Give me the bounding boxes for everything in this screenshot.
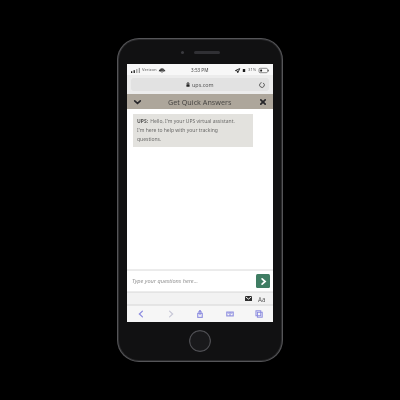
button[interactable]: Type your questions here...	[127, 270, 247, 292]
staticText: Aa	[258, 295, 266, 303]
staticText: 31%	[248, 67, 257, 73]
button[interactable]: Bookmarks	[221, 306, 239, 321]
button[interactable]: Email	[242, 293, 254, 304]
button[interactable]: Tabs	[250, 306, 268, 321]
staticText: UPS:	[137, 118, 149, 125]
staticText: Type your questions here...	[132, 277, 198, 285]
staticText: ups.com	[192, 81, 214, 88]
button[interactable]: ups.com	[131, 78, 269, 91]
button[interactable]: Share	[191, 306, 209, 321]
button[interactable]: Reload	[258, 81, 266, 89]
staticText: I'm here to help with your tracking	[137, 127, 218, 134]
button[interactable]: Forward	[162, 306, 180, 321]
staticText: Verizon	[142, 67, 157, 73]
staticText: Get Quick Answers	[168, 97, 232, 107]
staticText: questions.	[137, 136, 162, 143]
staticText: Hello, I'm your UPS virtual assistant.	[149, 118, 235, 125]
button[interactable]: Minimize	[127, 94, 147, 109]
button[interactable]: Home	[189, 330, 211, 352]
button[interactable]: Close	[253, 94, 273, 109]
button[interactable]: Text size	[256, 293, 268, 304]
button[interactable]: Back	[132, 306, 150, 321]
staticText: 3:53 PM	[191, 67, 209, 73]
button[interactable]: Send	[256, 274, 270, 288]
